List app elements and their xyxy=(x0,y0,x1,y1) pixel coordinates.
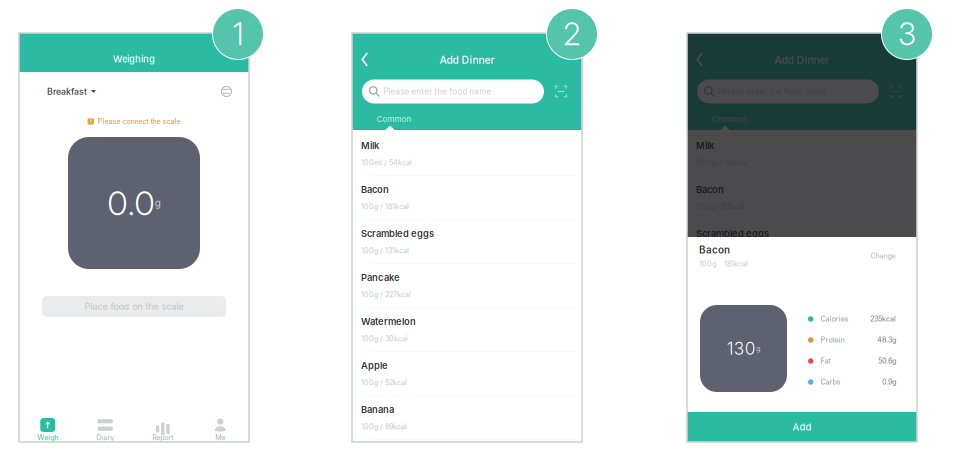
staticText: 100g / 52kcal xyxy=(361,378,407,387)
button[interactable]: Apple xyxy=(352,352,582,396)
button[interactable]: Milk xyxy=(352,132,582,176)
staticText: Add Dinner xyxy=(439,54,494,66)
staticText: Banana xyxy=(361,404,394,415)
button[interactable]: Report xyxy=(134,418,191,450)
button[interactable]: Apple xyxy=(687,352,917,396)
button[interactable]: Pancake xyxy=(687,264,917,308)
staticText: 1 xyxy=(232,15,243,52)
staticText: Scrambled eggs xyxy=(696,228,769,239)
staticText: Breakfast xyxy=(47,86,87,97)
staticText: Bacon xyxy=(696,184,724,195)
staticText: Change xyxy=(870,252,895,260)
staticText: Please enter the food name xyxy=(383,86,491,96)
button[interactable]: Bacon xyxy=(687,176,917,220)
staticText: Calories xyxy=(820,315,848,323)
staticText: Please enter the food name xyxy=(718,86,826,96)
staticText: 100g / 181kcal xyxy=(361,202,409,211)
staticText: Please connect the scale xyxy=(97,117,180,126)
button[interactable]: Banana xyxy=(687,396,917,440)
button[interactable]: Change xyxy=(865,250,901,262)
staticText: Me xyxy=(215,433,225,442)
staticText: 0.0 xyxy=(107,182,154,223)
button[interactable]: Scrambled eggs xyxy=(352,220,582,264)
staticText: 100g / 227kcal xyxy=(361,290,411,299)
staticText: Pancake xyxy=(361,272,400,283)
staticText: 235kcal xyxy=(870,315,896,323)
button[interactable]: Add xyxy=(687,412,917,442)
staticText: Add Dinner xyxy=(774,54,829,66)
staticText: 100g / 30kcal xyxy=(696,334,743,343)
staticText: g xyxy=(155,197,161,209)
staticText: Fat xyxy=(820,357,830,365)
button[interactable]: Watermelon xyxy=(352,308,582,352)
staticText: Milk xyxy=(361,140,379,151)
staticText: 100g / 52kcal xyxy=(696,378,742,387)
staticText: 100g / 181kcal xyxy=(696,202,744,211)
staticText: 100ml / 54kcal xyxy=(361,158,412,167)
staticText: 50.6g xyxy=(878,357,896,365)
button[interactable]: Watermelon xyxy=(687,308,917,352)
staticText: 100g / 30kcal xyxy=(361,334,408,343)
button[interactable]: Back xyxy=(354,48,376,70)
staticText: 48.3g xyxy=(877,336,896,344)
staticText: 181kcal xyxy=(724,260,748,268)
button[interactable]: Weigh xyxy=(19,418,76,450)
button[interactable]: Breakfast xyxy=(47,80,232,102)
staticText: Common xyxy=(711,114,746,124)
button[interactable]: Pancake xyxy=(352,264,582,308)
staticText: Weighing xyxy=(113,53,155,65)
staticText: Bacon xyxy=(361,184,389,195)
staticText: Apple xyxy=(361,360,388,371)
staticText: 0.9g xyxy=(882,378,896,386)
staticText: Banana xyxy=(696,404,729,415)
staticText: Milk xyxy=(696,140,714,151)
button[interactable]: Common xyxy=(372,112,416,126)
button[interactable]: Banana xyxy=(352,396,582,440)
button[interactable]: Common xyxy=(707,112,751,126)
staticText: 2 xyxy=(563,15,581,52)
button[interactable]: Scrambled eggs xyxy=(687,220,917,264)
staticText: g xyxy=(756,344,760,353)
staticText: Bacon xyxy=(699,244,730,256)
staticText: 100g / 131kcal xyxy=(361,246,409,255)
staticText: Apple xyxy=(696,360,723,371)
staticText: Common xyxy=(376,114,411,124)
staticText: Carbs xyxy=(820,378,840,386)
button[interactable]: Scan barcode xyxy=(888,83,904,99)
staticText: Report xyxy=(152,433,173,442)
button[interactable]: Place food on the scale xyxy=(42,296,226,317)
staticText: Diary xyxy=(96,433,114,442)
staticText: Watermelon xyxy=(361,316,416,327)
button[interactable]: Bacon xyxy=(352,176,582,220)
button[interactable]: Me xyxy=(191,418,249,450)
button[interactable]: Back xyxy=(689,48,711,70)
staticText: Protein xyxy=(820,336,844,344)
staticText: 100g xyxy=(699,260,716,268)
staticText: 100ml / 54kcal xyxy=(696,158,747,167)
staticText: 130 xyxy=(727,338,756,359)
staticText: Watermelon xyxy=(696,316,751,327)
staticText: 100g / 131kcal xyxy=(696,246,744,255)
staticText: 3 xyxy=(898,15,916,52)
staticText: 100g / 89kcal xyxy=(361,422,407,431)
staticText: Scrambled eggs xyxy=(361,228,434,239)
staticText: Add xyxy=(792,421,811,433)
button[interactable]: Diary xyxy=(76,418,134,450)
button[interactable]: Milk xyxy=(687,132,917,176)
staticText: Place food on the scale xyxy=(84,301,183,312)
button[interactable]: Scan barcode xyxy=(553,83,569,99)
staticText: Weigh xyxy=(37,433,58,442)
